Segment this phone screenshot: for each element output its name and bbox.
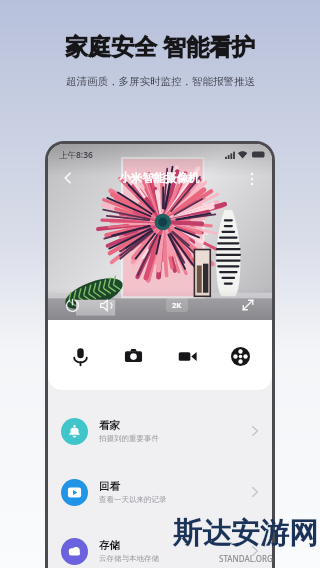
button[interactable]: 存储	[48, 534, 272, 568]
button[interactable]: 回看	[48, 473, 272, 511]
button[interactable]: Pan tilt control	[222, 338, 258, 374]
button[interactable]: More options	[241, 167, 263, 189]
staticText: 查看一天以来的记录	[99, 495, 167, 504]
button[interactable]: Back	[57, 167, 79, 189]
staticText: 家庭安全 智能看护	[65, 30, 255, 61]
button[interactable]: 看家	[48, 412, 272, 450]
button[interactable]: Record video	[169, 338, 205, 374]
button[interactable]: Fullscreen	[236, 293, 260, 317]
staticText: 斯达安游网	[173, 515, 318, 552]
staticText: STANDAL.ORG	[219, 553, 273, 564]
staticText: 存储	[99, 539, 120, 552]
button[interactable]: Microphone	[62, 338, 98, 374]
staticText: 看家	[99, 419, 120, 432]
staticText: 小米智能摄像机	[119, 171, 200, 185]
staticText: 回看	[99, 480, 120, 493]
staticText: 上午8:36	[59, 149, 93, 161]
staticText: 超清画质，多屏实时监控，智能报警推送	[66, 75, 255, 88]
staticText: 云存储与本地存储	[99, 554, 159, 563]
button[interactable]: Power	[60, 293, 84, 317]
button[interactable]: Volume	[94, 293, 118, 317]
button[interactable]: Take photo	[115, 338, 151, 374]
staticText: 拍摄到的重要事件	[99, 434, 159, 443]
button[interactable]: 2K	[166, 298, 188, 312]
staticText: 2K	[172, 300, 182, 310]
